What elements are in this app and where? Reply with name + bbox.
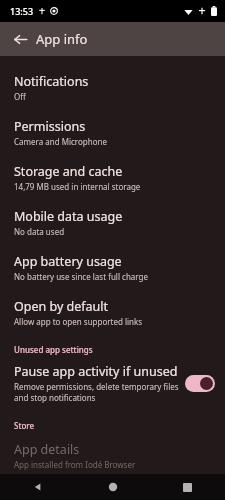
staticText: 13:53 [10,5,34,17]
staticText: App info [36,30,88,48]
staticText: Storage and cache [14,163,123,180]
staticText: App details [14,441,80,458]
staticText: Pause app activity if unused [14,363,178,380]
button[interactable]: App details [0,433,225,474]
button[interactable]: Home [75,474,150,500]
staticText: Camera and Microphone [14,136,107,147]
staticText: Permissions [14,118,86,135]
button[interactable]: Recents [150,474,225,500]
staticText: Store [14,420,35,431]
button[interactable]: Storage and cache [0,155,225,200]
staticText: Allow app to open supported links [14,316,143,327]
staticText: Off [14,91,26,102]
staticText: Remove permissions, delete temporary fil… [14,381,179,403]
staticText: No battery use since last full charge [14,271,148,282]
staticText: Open by default [14,298,109,315]
button[interactable]: App battery usage [0,245,225,290]
staticText: Unused app settings [14,344,93,355]
staticText: App installed from Iodé Browser [14,459,136,470]
staticText: App battery usage [14,253,122,270]
button[interactable]: Pause app activity toggle [185,375,215,392]
button[interactable]: Mobile data usage [0,200,225,245]
button[interactable]: Notifications [0,65,225,110]
button[interactable]: Back [6,25,34,53]
button[interactable]: Permissions [0,110,225,155]
staticText: No data used [14,226,65,237]
button[interactable]: Back [0,474,75,500]
button[interactable]: Pause app activity if unused [0,357,225,411]
staticText: 14,79 MB used in internal storage [14,181,141,192]
button[interactable]: Open by default [0,290,225,335]
staticText: Notifications [14,73,89,90]
staticText: Mobile data usage [14,208,123,225]
